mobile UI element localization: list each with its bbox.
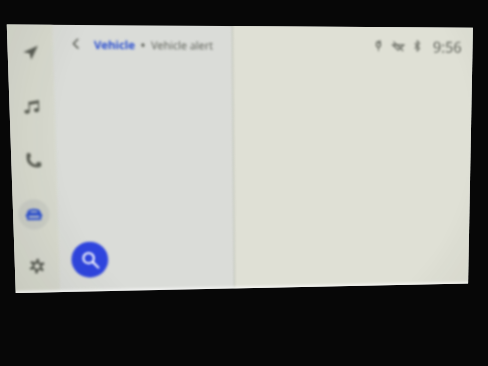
button[interactable]: Settings — [14, 244, 59, 287]
staticText: • — [141, 37, 146, 52]
staticText: Vehicle — [94, 36, 136, 52]
button[interactable]: Search — [71, 241, 109, 278]
staticText: Vehicle alert — [151, 38, 214, 53]
button[interactable]: Media — [9, 85, 54, 129]
button[interactable]: Back — [60, 29, 90, 58]
staticText: 9:56 — [433, 36, 462, 57]
button[interactable]: Vehicle — [12, 193, 56, 236]
button[interactable]: Vehicle — [94, 36, 136, 52]
button[interactable]: Phone — [11, 138, 56, 181]
button[interactable]: Navigation — [7, 30, 53, 74]
